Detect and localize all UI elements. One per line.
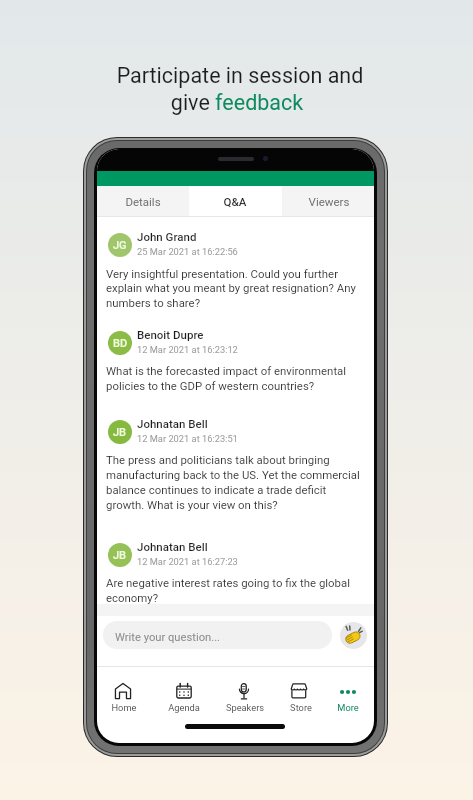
button[interactable] [218,668,272,723]
staticText: Johnatan Bell [137,417,208,430]
staticText: What is the forecasted impact of environ… [106,364,347,377]
staticText: JG [113,239,127,252]
button[interactable] [321,668,374,723]
staticText: balance continues to indicate a trade de… [106,483,327,496]
staticText: More [308,702,374,743]
button[interactable] [274,668,328,723]
staticText: 12 Mar 2021 at 16:27:23 [137,556,238,567]
staticText: BD [113,337,128,350]
staticText: Speakers [205,702,285,743]
staticText: numbers to share? [106,296,201,309]
button[interactable]: Send applause [340,622,367,649]
staticText: Very insightful presentation. Could you … [106,267,338,280]
staticText: Write your question... [115,631,221,644]
button[interactable] [189,186,282,216]
staticText: Q&A [155,195,315,743]
button[interactable] [103,621,332,649]
staticText: Home [97,702,164,743]
staticText: 12 Mar 2021 at 16:23:51 [137,433,238,444]
staticText: 12 Mar 2021 at 16:23:12 [137,344,238,355]
staticText: Benoit Dupre [137,328,204,341]
staticText: JB [113,426,127,439]
staticText: manufacturing back to the US. Yet the co… [106,468,360,481]
staticText: Details [97,195,223,743]
staticText: The press and politicians talk about bri… [106,453,330,466]
button[interactable] [282,186,374,216]
staticText: Agenda [144,702,224,743]
staticText: Johnatan Bell [137,540,208,553]
staticText: Participate in session and [80,63,400,800]
staticText: growth. What is your view on this? [106,498,278,511]
button[interactable] [97,668,151,723]
staticText: Viewers [249,195,374,743]
staticText: explain what you meant by great resignat… [106,281,356,294]
button[interactable] [157,668,211,723]
staticText: Store [261,702,341,743]
staticText: John Grand [137,230,197,243]
button[interactable] [97,186,189,216]
staticText: 25 Mar 2021 at 16:22:56 [137,246,238,257]
staticText: Are negative interest rates going to fix… [106,576,350,589]
staticText: policies to the GDP of western countries… [106,379,315,392]
staticText: economy? [106,591,159,604]
staticText: give feedback [77,90,397,800]
staticText: JB [113,549,127,562]
